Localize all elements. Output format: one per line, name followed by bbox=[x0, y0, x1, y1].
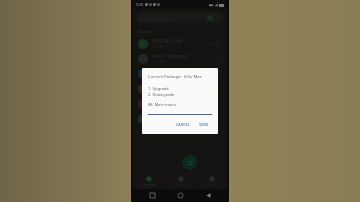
button[interactable]: New message bbox=[182, 155, 197, 170]
button[interactable]: Back bbox=[199, 189, 217, 202]
button[interactable]: Recents bbox=[143, 189, 161, 202]
staticText: 88. Main menu bbox=[148, 102, 177, 107]
button[interactable]: 1800 Service bbox=[133, 111, 227, 126]
staticText: Anton Thompson bbox=[152, 53, 189, 59]
staticText: 0763 240 3346 bbox=[152, 38, 183, 44]
staticText: home bbox=[152, 104, 162, 109]
staticText: 2 mobile bbox=[152, 59, 168, 64]
button[interactable]: Favorites bbox=[133, 173, 165, 189]
staticText: mobile bbox=[152, 89, 164, 94]
staticText: 1 mobile bbox=[152, 74, 168, 79]
button[interactable]: Dave Smith bbox=[133, 81, 227, 96]
button[interactable]: Anton Thompson bbox=[133, 51, 227, 66]
staticText: Dave Smith bbox=[152, 83, 177, 89]
staticText: 2. Downgrade bbox=[148, 92, 175, 97]
button[interactable]: 0763 240 3346 bbox=[133, 36, 227, 51]
button[interactable]: Home bbox=[171, 189, 189, 202]
staticText: CANCEL bbox=[176, 122, 190, 127]
button[interactable]: Contacts bbox=[196, 173, 227, 189]
staticText: Olga Kane bbox=[152, 98, 174, 104]
staticText: 1. Upgrade bbox=[148, 86, 169, 91]
button[interactable]: Olga Kane bbox=[133, 96, 227, 111]
button[interactable]: SEND bbox=[196, 121, 212, 128]
staticText: Recent bbox=[139, 29, 153, 34]
button[interactable]: Lilith Perez bbox=[133, 66, 227, 81]
staticText: SEND bbox=[199, 122, 209, 127]
button[interactable]: CANCEL bbox=[173, 121, 193, 128]
button[interactable]: Recents bbox=[165, 173, 196, 189]
staticText: 1800 Service bbox=[152, 113, 179, 119]
staticText: 9:28 bbox=[136, 2, 143, 7]
button[interactable]: Search contacts bbox=[137, 12, 223, 23]
staticText: Current Package: 60tv Max bbox=[148, 74, 202, 80]
staticText: Favorites bbox=[143, 183, 156, 187]
